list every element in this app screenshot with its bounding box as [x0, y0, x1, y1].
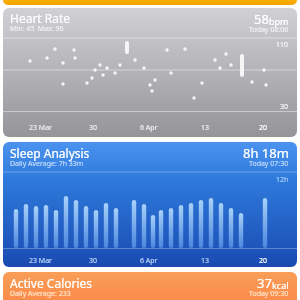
staticText: 110 — [276, 40, 289, 50]
staticText: 6 Apr — [140, 123, 158, 133]
button[interactable]: Sleep Analysis — [3, 142, 297, 267]
staticText: Today 08:06 — [249, 25, 289, 35]
staticText: 58 — [254, 10, 269, 28]
staticText: 30 — [280, 102, 289, 112]
staticText: 13 — [201, 256, 210, 266]
staticText: Daily Average: 7h 33m — [10, 159, 84, 169]
staticText: 20 — [259, 256, 268, 266]
staticText: 30 — [89, 256, 98, 266]
staticText: 23 Mar — [29, 123, 52, 133]
staticText: Heart Rate — [10, 10, 71, 26]
staticText: 12h — [276, 175, 289, 185]
staticText: 13 — [201, 123, 210, 133]
staticText: Daily Average: 233 — [10, 289, 71, 299]
staticText: Min: 45 Max: 96 — [10, 24, 64, 34]
staticText: Today 07:30 — [249, 159, 289, 169]
button[interactable] — [3, 0, 297, 5]
staticText: Today 09:30 — [249, 289, 289, 299]
staticText: kcal — [272, 279, 289, 291]
staticText: 6 Apr — [140, 256, 158, 266]
staticText: 23 Mar — [29, 256, 52, 266]
staticText: 37 — [257, 274, 272, 292]
button[interactable]: Active Calories — [3, 272, 297, 300]
staticText: 20 — [259, 123, 268, 133]
staticText: Sleep Analysis — [10, 145, 90, 161]
staticText: 30 — [89, 123, 98, 133]
staticText: 8h 18m — [243, 144, 289, 162]
staticText: bpm — [269, 15, 289, 27]
staticText: Active Calories — [10, 275, 93, 291]
button[interactable]: Heart Rate — [3, 8, 297, 137]
